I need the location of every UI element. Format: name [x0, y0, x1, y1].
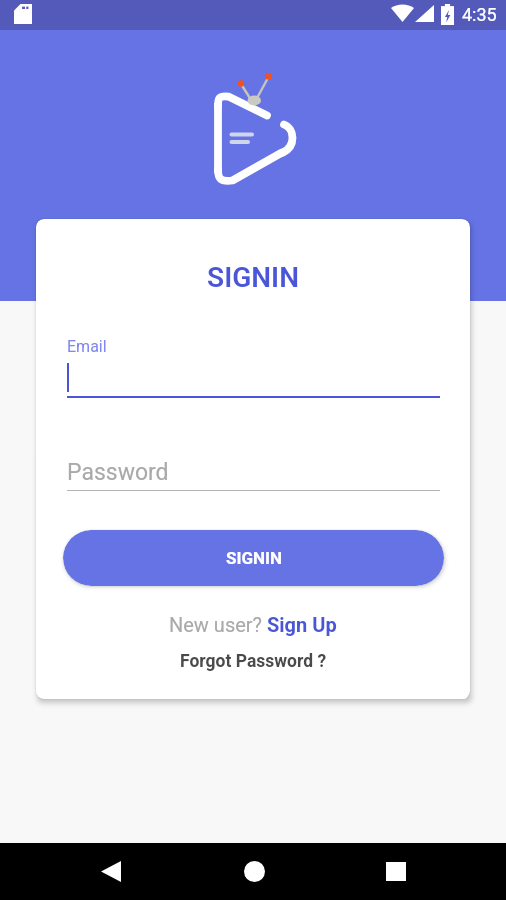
button[interactable]: SIGNIN	[63, 530, 444, 586]
staticText: SIGNIN	[36, 261, 470, 294]
staticText: Email	[67, 337, 107, 356]
button[interactable]: Home	[234, 843, 274, 900]
staticText: Forgot Password ?	[180, 651, 327, 672]
button[interactable]: Recent apps	[376, 843, 416, 900]
staticText: New user? Sign Up	[169, 613, 337, 636]
button[interactable]: Forgot Password ?	[36, 646, 470, 676]
staticText: 4:35	[462, 4, 497, 25]
staticText: SIGNIN	[226, 548, 282, 568]
staticText: Password	[67, 459, 169, 486]
button[interactable]: Back	[91, 843, 131, 900]
button[interactable]: New user? Sign Up	[36, 609, 470, 639]
